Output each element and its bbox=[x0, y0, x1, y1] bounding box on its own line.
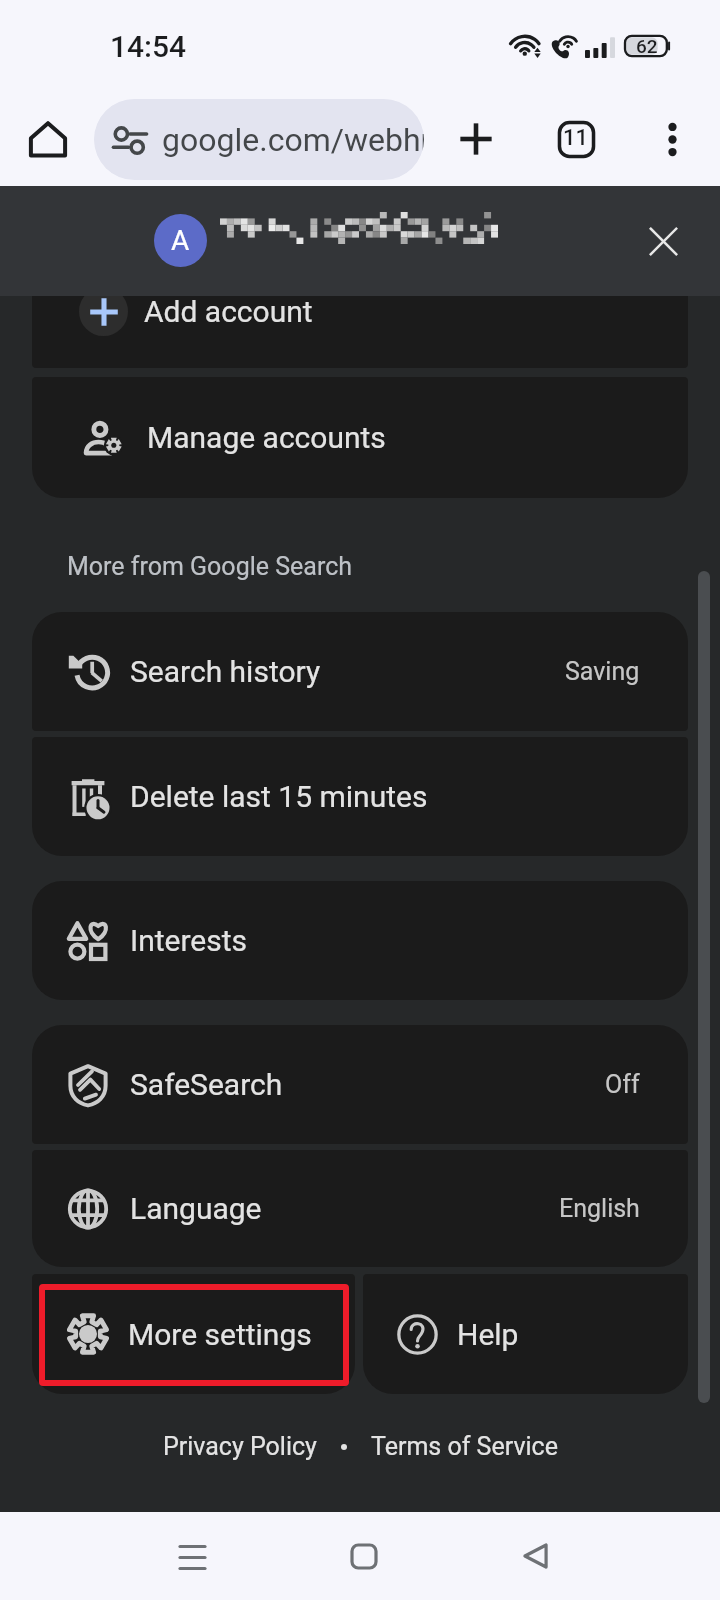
staticText: Help bbox=[457, 1317, 519, 1352]
button[interactable]: google.com/webhp bbox=[94, 99, 424, 180]
staticText: 11 bbox=[563, 125, 589, 151]
staticText: A bbox=[171, 224, 190, 257]
button[interactable]: Interests bbox=[32, 881, 688, 1000]
staticText: Delete last 15 minutes bbox=[130, 779, 428, 814]
button[interactable]: Add account bbox=[32, 296, 688, 368]
staticText: Interests bbox=[130, 923, 248, 958]
button[interactable]: Back bbox=[485, 1512, 585, 1600]
staticText: Off bbox=[605, 1070, 640, 1099]
staticText: Search history bbox=[130, 654, 321, 689]
staticText: Manage accounts bbox=[147, 420, 386, 455]
button[interactable]: New tab bbox=[436, 99, 516, 179]
staticText: Language bbox=[130, 1191, 262, 1226]
button[interactable]: More options bbox=[632, 99, 712, 179]
staticText: 62 bbox=[636, 35, 658, 57]
button[interactable]: Switch tabs bbox=[536, 99, 616, 179]
staticText: SafeSearch bbox=[130, 1067, 283, 1102]
button[interactable]: SafeSearch bbox=[32, 1025, 688, 1144]
button[interactable]: Language bbox=[32, 1150, 688, 1267]
button[interactable]: Close bbox=[625, 203, 701, 279]
button[interactable]: Delete last 15 minutes bbox=[32, 737, 688, 856]
button[interactable]: Privacy Policy bbox=[163, 1432, 317, 1461]
staticText: Add account bbox=[144, 296, 313, 329]
button[interactable]: Home bbox=[8, 99, 88, 179]
staticText: 14:54 bbox=[110, 29, 187, 64]
staticText: Saving bbox=[565, 657, 640, 686]
button[interactable]: Terms of Service bbox=[371, 1432, 558, 1461]
staticText: More from Google Search bbox=[67, 552, 352, 581]
button[interactable]: Manage accounts bbox=[32, 377, 688, 498]
staticText: More settings bbox=[128, 1317, 312, 1352]
button[interactable]: Search history bbox=[32, 612, 688, 731]
button[interactable]: Help bbox=[363, 1274, 688, 1394]
button[interactable]: Home bbox=[314, 1512, 414, 1600]
staticText: google.com/webhp bbox=[162, 121, 424, 159]
button[interactable]: Recent apps bbox=[142, 1512, 242, 1600]
staticText: English bbox=[559, 1194, 640, 1223]
button[interactable]: More settings bbox=[32, 1274, 355, 1394]
